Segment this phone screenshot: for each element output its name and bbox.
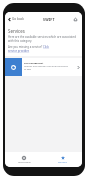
button[interactable]: Information xyxy=(5,152,43,167)
staticText: Key management xyxy=(24,62,44,65)
button[interactable]: Home xyxy=(72,16,79,23)
staticText: Services xyxy=(58,161,67,164)
staticText: Here are the available services which ar… xyxy=(8,35,79,43)
button[interactable]: Services xyxy=(43,152,82,167)
staticText: Go back xyxy=(12,17,25,21)
staticText: Services xyxy=(8,28,25,34)
staticText: SWIFT xyxy=(43,17,55,22)
staticText: Information xyxy=(18,161,31,164)
button[interactable]: Go back xyxy=(7,15,26,23)
staticText: Internet and external rules and processi… xyxy=(24,65,69,71)
button[interactable]: Are you missing a service? Click service… xyxy=(8,45,52,53)
button[interactable]: Key management xyxy=(5,58,82,76)
